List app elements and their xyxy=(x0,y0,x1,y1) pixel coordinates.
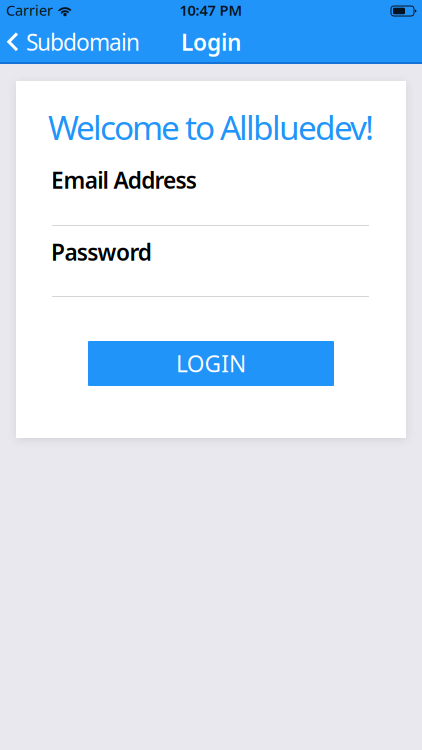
button[interactable]: LOGIN xyxy=(88,341,334,386)
staticText: Login xyxy=(181,27,241,57)
button[interactable]: Subdomain xyxy=(7,27,140,57)
staticText: Welcome to Allbluedev! xyxy=(48,105,374,149)
staticText: Email Address xyxy=(51,165,197,195)
staticText: Carrier xyxy=(6,0,53,20)
staticText: Password xyxy=(51,237,152,267)
staticText: LOGIN xyxy=(176,348,246,378)
staticText: Subdomain xyxy=(26,27,140,57)
staticText: 10:47 PM xyxy=(179,0,242,20)
